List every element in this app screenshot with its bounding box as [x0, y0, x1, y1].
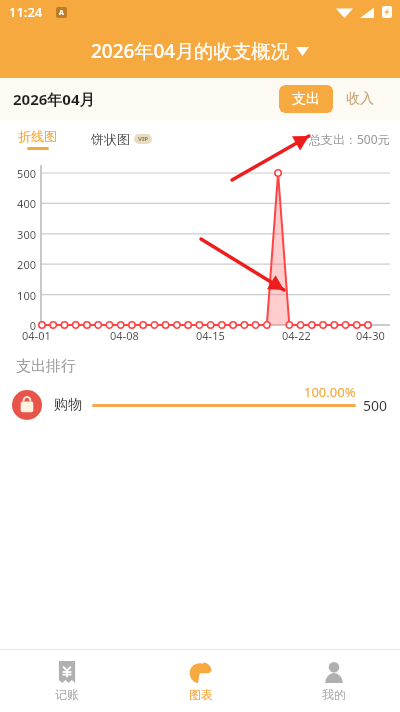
staticText: 04-22	[282, 328, 311, 343]
button[interactable]: 图表	[134, 650, 267, 712]
staticText: 饼状图	[91, 131, 130, 147]
staticText: 400	[0, 196, 36, 211]
button[interactable]: 2026年04月的收支概况	[0, 24, 400, 78]
button[interactable]: 饼状图	[91, 131, 152, 147]
staticText: 04-30	[356, 328, 385, 343]
staticText: 2026年04月的收支概况	[91, 38, 290, 64]
button[interactable]: 记账	[0, 650, 134, 712]
staticText: 折线图	[18, 128, 57, 144]
staticText: 我的	[322, 687, 346, 702]
staticText: 100	[0, 288, 36, 303]
staticText: 300	[0, 227, 36, 242]
button[interactable]: 支出	[279, 85, 333, 113]
staticText: 500	[0, 166, 36, 181]
staticText: A	[59, 8, 64, 18]
button[interactable]: 收入	[333, 85, 387, 113]
staticText: 11:24	[9, 3, 43, 21]
staticText: 收入	[346, 90, 374, 108]
staticText: 0	[0, 318, 36, 333]
button[interactable]: 折线图	[18, 128, 57, 150]
staticText: 200	[0, 257, 36, 272]
staticText: 500	[363, 396, 388, 415]
staticText: 04-08	[110, 328, 139, 343]
button[interactable]: 我的	[267, 650, 400, 712]
staticText: 总支出：500元	[309, 131, 390, 147]
staticText: 100.00%	[304, 383, 356, 401]
button[interactable]: 购物	[0, 390, 400, 420]
staticText: 04-01	[22, 328, 51, 343]
staticText: 04-15	[196, 328, 225, 343]
staticText: 支出	[292, 90, 320, 108]
staticText: 支出排行	[16, 357, 76, 376]
staticText: VIP	[138, 135, 148, 143]
staticText: 图表	[189, 687, 213, 702]
staticText: 2026年04月	[13, 89, 95, 109]
staticText: 记账	[55, 687, 79, 702]
staticText: 购物	[54, 396, 82, 414]
